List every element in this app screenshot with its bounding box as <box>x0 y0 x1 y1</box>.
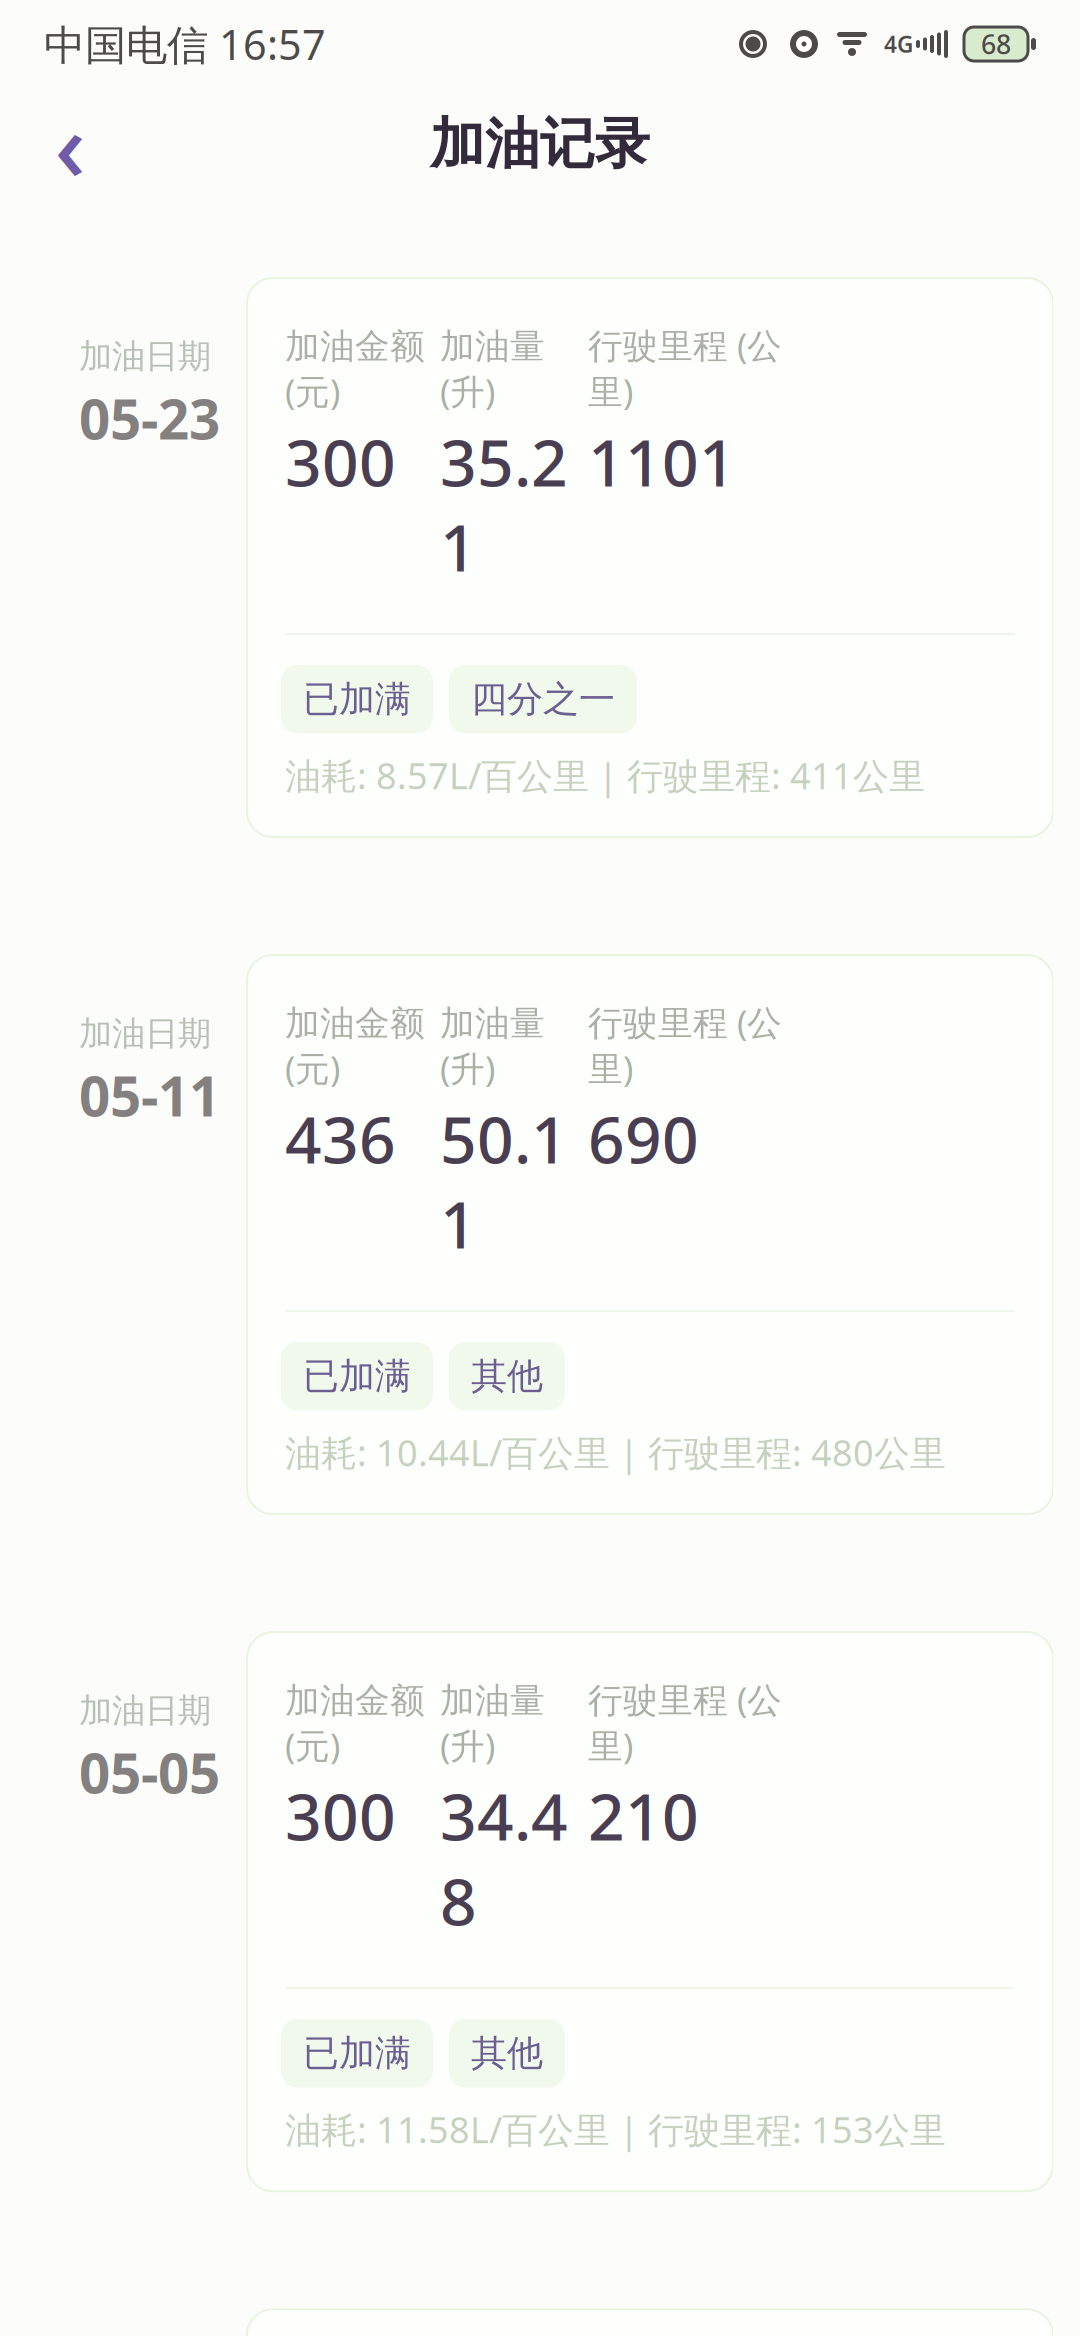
staticText: 加油金额 (元) <box>285 1676 425 1768</box>
button[interactable]: 其他 <box>449 2019 565 2087</box>
staticText: 加油金额 (元) <box>285 322 425 414</box>
staticText: 加油日期 <box>79 1690 211 1731</box>
button[interactable]: 返回 <box>24 98 116 190</box>
staticText: 行驶里程 (公里) <box>588 1676 782 1768</box>
button[interactable]: 加油日期 <box>27 837 1053 1514</box>
staticText: 已加满 <box>303 677 411 721</box>
button[interactable]: 四分之一 <box>449 665 637 733</box>
staticText: 35.21 <box>440 419 568 589</box>
staticText: 四分之一 <box>471 677 615 721</box>
staticText: 300 <box>285 1773 396 1858</box>
staticText: 油耗: 11.58L/百公里 | 行驶里程: 153公里 <box>285 2105 946 2153</box>
staticText: 300 <box>285 419 396 504</box>
button[interactable]: 已加满 <box>281 1342 433 1410</box>
staticText: 690 <box>588 1096 699 1181</box>
staticText: 油耗: 8.57L/百公里 | 行驶里程: 411公里 <box>285 751 925 799</box>
staticText: 4G <box>884 29 913 59</box>
staticText: 加油日期 <box>79 1013 211 1054</box>
staticText: 中国电信 16:57 <box>44 17 326 71</box>
staticText: 05-05 <box>79 1736 220 1809</box>
staticText: 加油记录 <box>430 110 650 177</box>
button[interactable]: 已加满 <box>281 2019 433 2087</box>
staticText: 436 <box>285 1096 396 1181</box>
staticText: 加油量 (升) <box>440 999 545 1091</box>
staticText: 05-11 <box>79 1059 220 1132</box>
staticText: 其他 <box>471 2031 543 2075</box>
button[interactable]: 加油日期 <box>27 2191 1053 2336</box>
staticText: 05-23 <box>79 382 220 454</box>
button[interactable]: 加油日期 <box>27 200 1053 837</box>
staticText: 油耗: 10.44L/百公里 | 行驶里程: 480公里 <box>285 1428 946 1476</box>
staticText: 1101 <box>588 419 736 504</box>
staticText: 加油量 (升) <box>440 322 545 414</box>
staticText: 已加满 <box>303 1354 411 1398</box>
staticText: 行驶里程 (公里) <box>588 322 782 414</box>
staticText: 已加满 <box>303 2031 411 2075</box>
staticText: 加油日期 <box>79 336 211 377</box>
staticText: 加油量 (升) <box>440 1676 545 1768</box>
staticText: 68 <box>981 26 1011 62</box>
staticText: 其他 <box>471 1354 543 1398</box>
button[interactable]: 其他 <box>449 1342 565 1410</box>
staticText: ‹ <box>54 80 85 208</box>
button[interactable]: 加油日期 <box>27 1514 1053 2191</box>
staticText: 210 <box>588 1773 699 1858</box>
staticText: 50.11 <box>440 1096 568 1266</box>
button[interactable]: 已加满 <box>281 665 433 733</box>
staticText: 行驶里程 (公里) <box>588 999 782 1091</box>
staticText: 加油金额 (元) <box>285 999 425 1091</box>
staticText: 34.48 <box>440 1773 568 1943</box>
